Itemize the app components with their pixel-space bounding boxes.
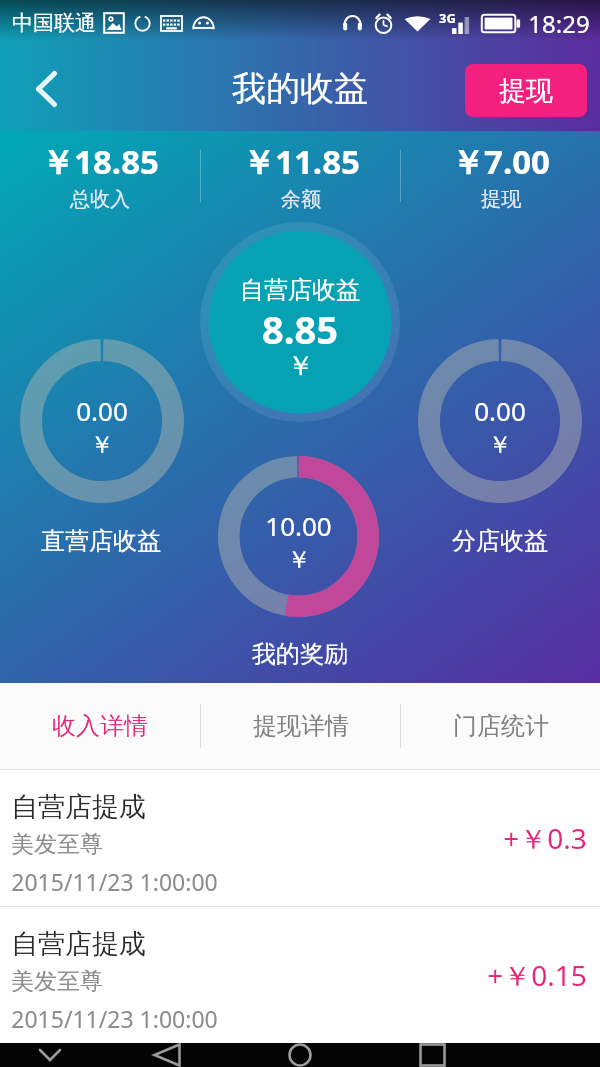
staticText: 自营店收益 [240, 275, 360, 305]
staticText: 自营店提成 [11, 790, 146, 824]
staticText: 我的奖励 [252, 639, 348, 669]
button[interactable]: Home [272, 1043, 328, 1067]
staticText: ￥7.00 [451, 139, 550, 184]
staticText: +￥0.15 [487, 956, 587, 994]
staticText: 门店统计 [453, 711, 549, 741]
button[interactable]: 门店统计 [401, 683, 600, 769]
staticText: 直营店收益 [41, 526, 161, 556]
staticText: ￥18.85 [41, 139, 159, 184]
staticText: 10.00 [265, 508, 332, 543]
staticText: 0.00 [474, 393, 526, 428]
staticText: 总收入 [70, 187, 130, 212]
staticText: 2015/11/23 1:00:00 [11, 866, 218, 897]
button[interactable]: ￥18.85 [0, 139, 200, 212]
button[interactable]: Back [139, 1043, 195, 1067]
staticText: 收入详情 [52, 711, 148, 741]
button[interactable]: ￥7.00 [401, 139, 600, 212]
staticText: 2015/11/23 1:00:00 [11, 1003, 218, 1034]
button[interactable]: Recents [404, 1043, 460, 1067]
staticText: ￥ [287, 349, 314, 383]
staticText: ￥ [90, 430, 114, 460]
staticText: 18:29 [528, 7, 590, 40]
staticText: +￥0.3 [503, 819, 587, 857]
staticText: 0.00 [76, 393, 128, 428]
staticText: 美发至尊 [11, 967, 103, 996]
staticText: 提现详情 [253, 711, 349, 741]
staticText: 3G [439, 9, 456, 27]
staticText: 余额 [281, 187, 321, 212]
button[interactable]: 自营店提成 [0, 770, 600, 906]
staticText: 美发至尊 [11, 830, 103, 859]
button[interactable]: 0.00 [418, 339, 582, 503]
staticText: ￥ [287, 545, 311, 575]
button[interactable]: Back [19, 61, 74, 116]
staticText: 8.85 [262, 303, 338, 355]
staticText: ￥11.85 [242, 139, 360, 184]
staticText: 分店收益 [452, 526, 548, 556]
button[interactable]: Hide keyboard [22, 1043, 78, 1067]
staticText: 提现 [499, 74, 553, 108]
button[interactable]: 自营店提成 [0, 907, 600, 1043]
staticText: 提现 [481, 187, 521, 212]
staticText: 我的收益 [232, 67, 368, 110]
button[interactable]: ￥11.85 [201, 139, 400, 212]
staticText: 中国联通 [12, 10, 96, 36]
button[interactable]: 收入详情 [0, 683, 200, 769]
staticText: 自营店提成 [11, 927, 146, 961]
button[interactable]: 0.00 [20, 339, 184, 503]
button[interactable]: 提现 [465, 64, 587, 117]
button[interactable]: 提现详情 [201, 683, 400, 769]
staticText: ￥ [488, 430, 512, 460]
button[interactable]: 10.00 [218, 456, 379, 617]
